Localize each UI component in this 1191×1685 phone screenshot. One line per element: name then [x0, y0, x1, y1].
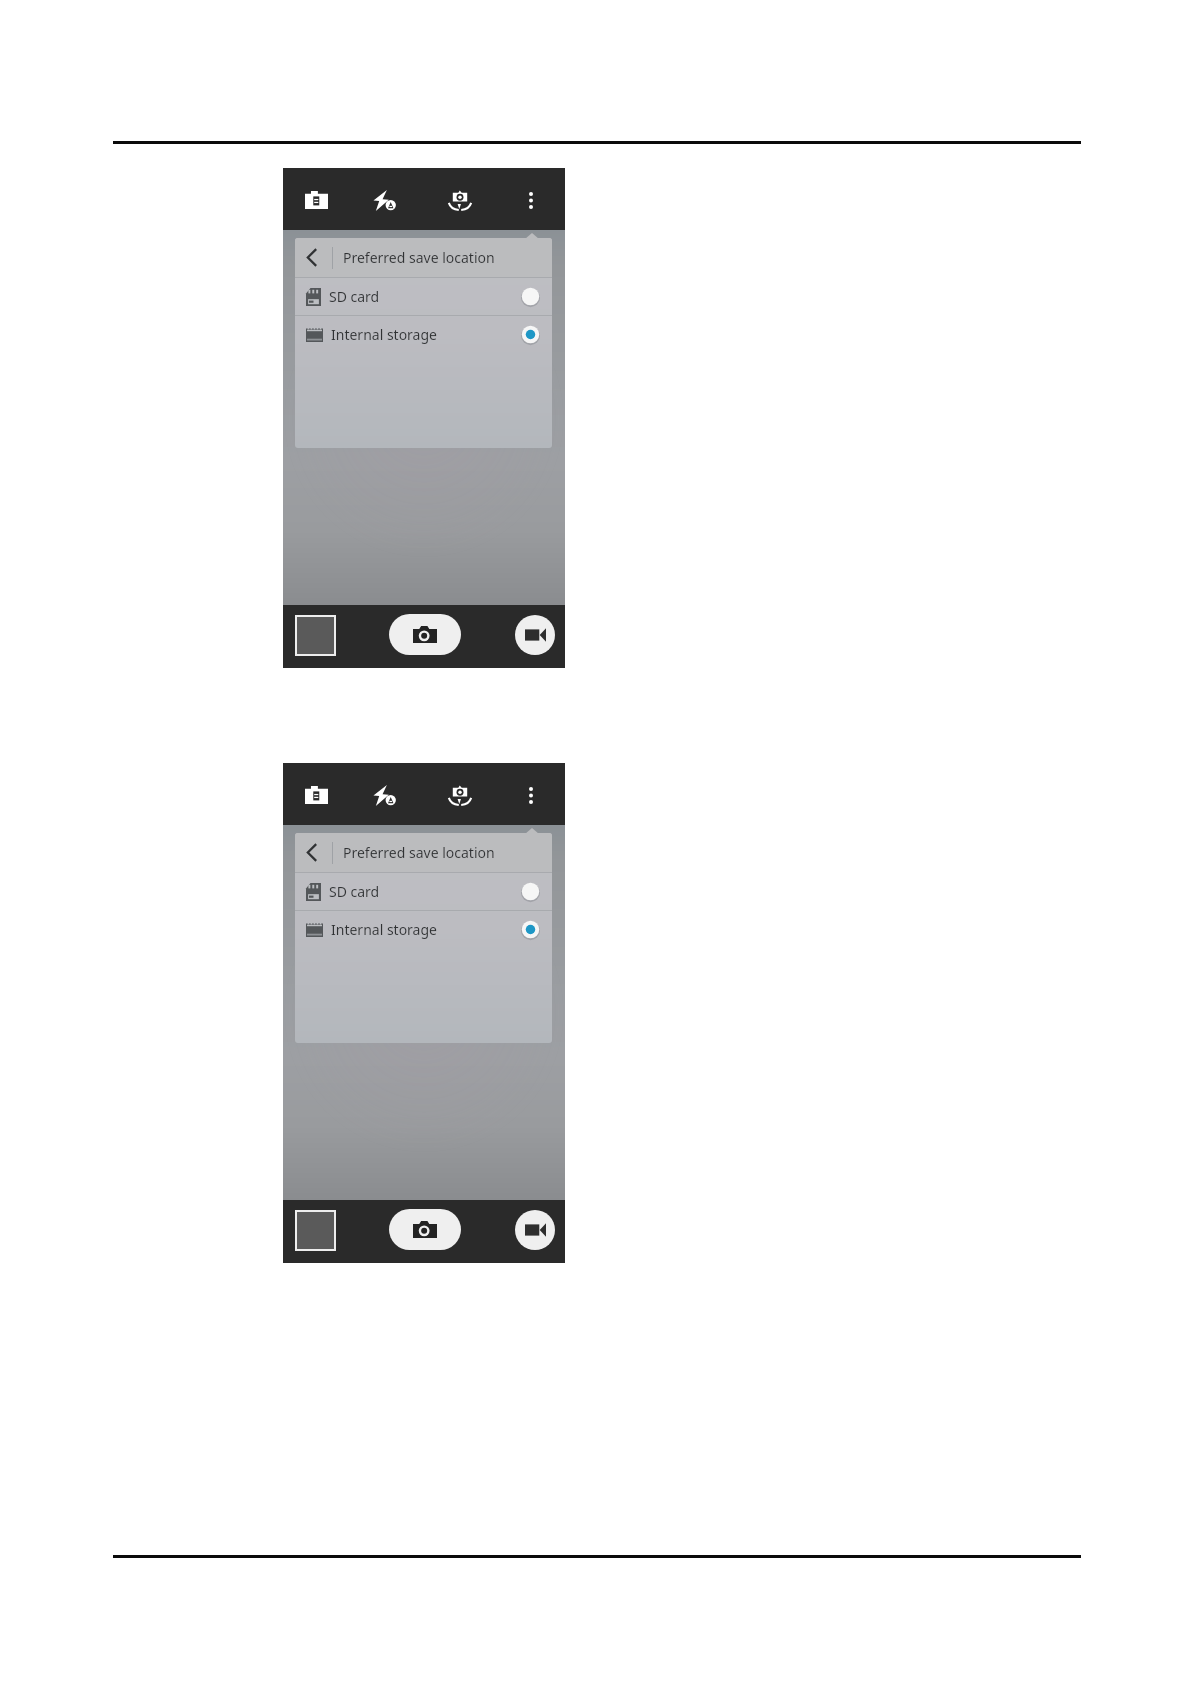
- button[interactable]: Record video: [515, 1210, 555, 1250]
- button[interactable]: Preferred save location: [295, 833, 552, 872]
- button[interactable]: Preferred save location: [295, 238, 552, 277]
- button[interactable]: SD card: [295, 278, 552, 315]
- staticText: Preferred save location: [343, 843, 495, 862]
- staticText: Internal storage: [331, 920, 437, 939]
- staticText: SD card: [329, 882, 380, 901]
- button[interactable]: Take photo: [389, 1209, 461, 1250]
- button[interactable]: Flash auto: [351, 178, 417, 222]
- staticText: Preferred save location: [343, 248, 495, 267]
- button[interactable]: Shooting mode: [283, 773, 349, 817]
- button[interactable]: Switch camera: [427, 773, 493, 817]
- button[interactable]: More options: [499, 773, 563, 817]
- button[interactable]: Record video: [515, 615, 555, 655]
- button[interactable]: Gallery: [295, 615, 336, 656]
- staticText: Internal storage: [331, 325, 437, 344]
- button[interactable]: Internal storage: [295, 316, 552, 353]
- button[interactable]: Take photo: [389, 614, 461, 655]
- button[interactable]: Flash auto: [351, 773, 417, 817]
- button[interactable]: More options: [499, 178, 563, 222]
- staticText: SD card: [329, 287, 380, 306]
- button[interactable]: SD card: [295, 873, 552, 910]
- button[interactable]: Switch camera: [427, 178, 493, 222]
- button[interactable]: Internal storage: [295, 911, 552, 948]
- button[interactable]: Shooting mode: [283, 178, 349, 222]
- button[interactable]: Gallery: [295, 1210, 336, 1251]
